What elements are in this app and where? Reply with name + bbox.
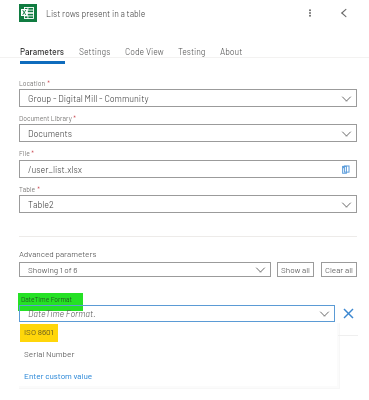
staticText: Group - Digital Mill - Community	[28, 93, 342, 104]
button[interactable]: Parameters	[13, 46, 72, 64]
button[interactable]: Clear all	[321, 262, 357, 277]
button[interactable]: Enter custom value	[18, 366, 337, 386]
button[interactable]: Table2	[19, 195, 357, 213]
staticText: Testing	[178, 46, 206, 56]
staticText: File	[19, 149, 30, 157]
button[interactable]: Testing	[171, 46, 213, 64]
button[interactable]: Location	[19, 79, 51, 87]
staticText: Table2	[28, 199, 342, 210]
button[interactable]: DateTime Format.	[19, 305, 335, 322]
button[interactable]: Settings	[72, 46, 118, 64]
staticText: About	[220, 46, 243, 56]
button[interactable]: Clear	[341, 306, 356, 321]
button[interactable]: Collapse	[336, 5, 352, 21]
staticText: Parameters	[20, 46, 65, 56]
staticText: /user_list.xlsx	[28, 164, 340, 175]
staticText: X	[22, 8, 27, 16]
button[interactable]: Document Library	[19, 114, 77, 122]
button[interactable]: About	[213, 46, 250, 64]
staticText: Location	[19, 79, 46, 87]
staticText: Settings	[79, 46, 111, 56]
staticText: DateTime Format	[21, 295, 72, 303]
staticText: Show all	[281, 265, 310, 275]
button[interactable]: DateTime Format	[18, 293, 83, 311]
button[interactable]: More options	[302, 5, 318, 21]
staticText: Documents	[28, 128, 342, 139]
staticText: Showing 1 of 6	[28, 265, 256, 275]
button[interactable]: /user_list.xlsx	[19, 160, 357, 178]
staticText: List rows present in a table	[46, 8, 146, 18]
staticText: ISO 8601	[24, 327, 54, 337]
button[interactable]: Table	[19, 185, 41, 193]
staticText: *	[30, 149, 35, 157]
staticText: Advanced parameters	[19, 249, 97, 259]
staticText: Serial Number	[24, 349, 75, 359]
staticText: Table	[19, 185, 36, 193]
button[interactable]: ISO 8601	[18, 322, 337, 344]
staticText: DateTime Format.	[28, 308, 320, 319]
button[interactable]: Showing 1 of 6	[19, 262, 271, 277]
staticText: *	[36, 185, 41, 193]
button[interactable]: Serial Number	[18, 344, 337, 365]
button[interactable]: File	[19, 149, 35, 157]
button[interactable]: Show all	[277, 262, 314, 277]
button[interactable]: Excel connector icon	[19, 4, 37, 22]
staticText: Enter custom value	[24, 371, 93, 381]
staticText: Document Library	[19, 114, 72, 122]
button[interactable]: Documents	[19, 124, 357, 142]
staticText: *	[46, 79, 51, 87]
staticText: Clear all	[325, 265, 353, 275]
staticText: Code View	[125, 46, 164, 56]
button[interactable]: Group - Digital Mill - Community	[19, 89, 357, 107]
button[interactable]: Code View	[118, 46, 171, 64]
staticText: *	[72, 114, 77, 122]
